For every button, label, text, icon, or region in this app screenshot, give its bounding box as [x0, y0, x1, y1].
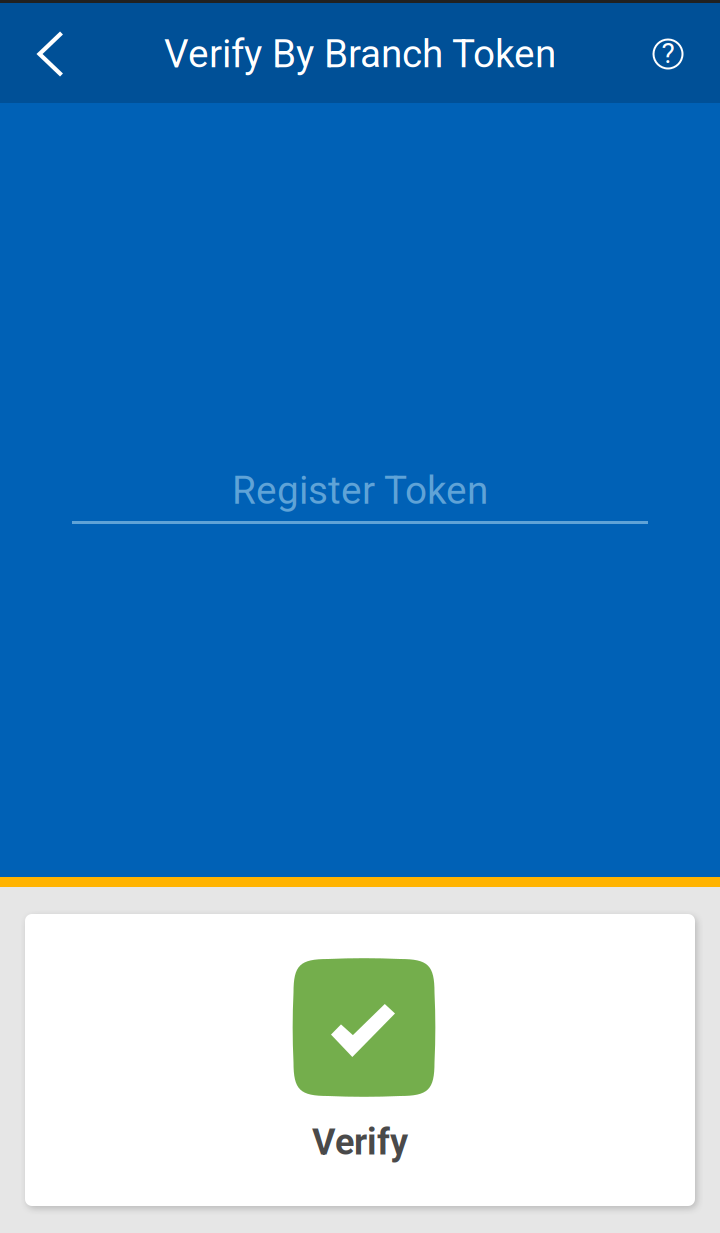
staticText: Verify — [312, 1121, 408, 1163]
button[interactable]: Help — [616, 3, 720, 103]
button[interactable]: Back — [0, 3, 99, 103]
staticText: Register Token — [232, 468, 488, 513]
staticText: Verify By Branch Token — [164, 31, 556, 77]
staticText: ? — [661, 37, 674, 70]
button[interactable]: Verify — [25, 914, 695, 1206]
